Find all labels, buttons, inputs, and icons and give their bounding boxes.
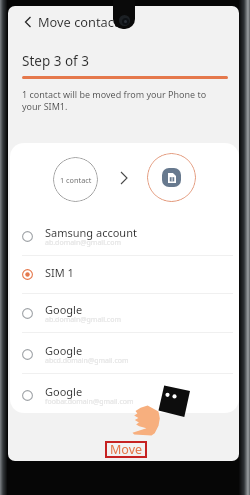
staticText: Move contacts [38,13,125,30]
staticText: Samsung account [45,225,137,240]
button[interactable]: Google [10,334,239,374]
staticText: Google [45,302,83,317]
button[interactable]: Samsung account [10,216,239,256]
staticText: Move [110,441,143,458]
button[interactable]: Back [15,9,41,35]
staticText: SIM 1 [45,265,74,280]
button[interactable]: SIM 1 [10,254,239,294]
staticText: Google [45,384,83,399]
staticText: Google [45,343,83,358]
staticText: foobar.domain@gmail.com [45,397,134,407]
staticText: Step 3 of 3 [22,52,89,70]
staticText: abcd.domain@gmail.com [45,356,129,366]
button[interactable]: Google [10,293,239,333]
button[interactable]: Move [105,441,147,458]
staticText: ab.domain@gmail.com [45,238,121,248]
staticText: 1 contact will be moved from your Phone … [22,88,224,112]
staticText: ab.domain@gmail.com [45,315,121,325]
staticText: 1 contact [60,175,92,185]
button[interactable]: Google [10,375,239,413]
